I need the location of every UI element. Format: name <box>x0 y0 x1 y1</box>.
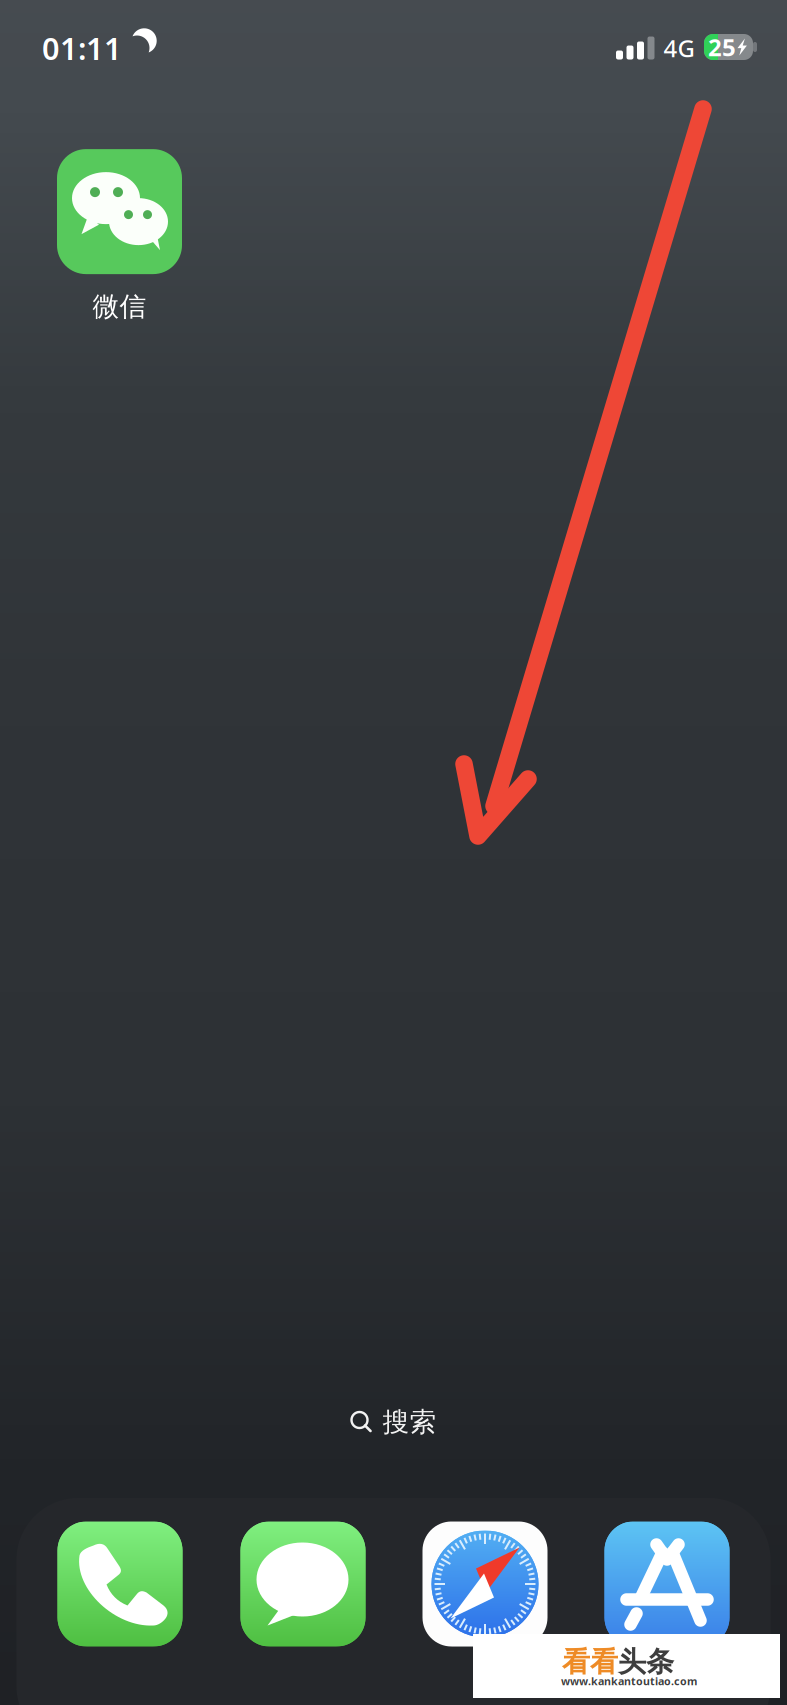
staticText: 25 <box>708 31 736 63</box>
button[interactable]: Phone <box>57 1521 182 1646</box>
staticText: 微信 <box>92 290 146 323</box>
staticText: www.kankantoutiao.com <box>561 1674 697 1688</box>
staticText: 看看 <box>562 1645 618 1679</box>
staticText: 01:11 <box>42 28 122 68</box>
button[interactable]: 搜索 <box>330 1397 456 1447</box>
staticText: 搜索 <box>382 1406 436 1438</box>
staticText: 4G <box>663 32 694 64</box>
button[interactable]: 微信 <box>57 149 182 323</box>
button[interactable]: App Store <box>604 1521 729 1646</box>
button[interactable]: Messages <box>240 1521 365 1646</box>
button[interactable]: Safari <box>422 1521 547 1646</box>
staticText: 头条 <box>618 1645 674 1679</box>
